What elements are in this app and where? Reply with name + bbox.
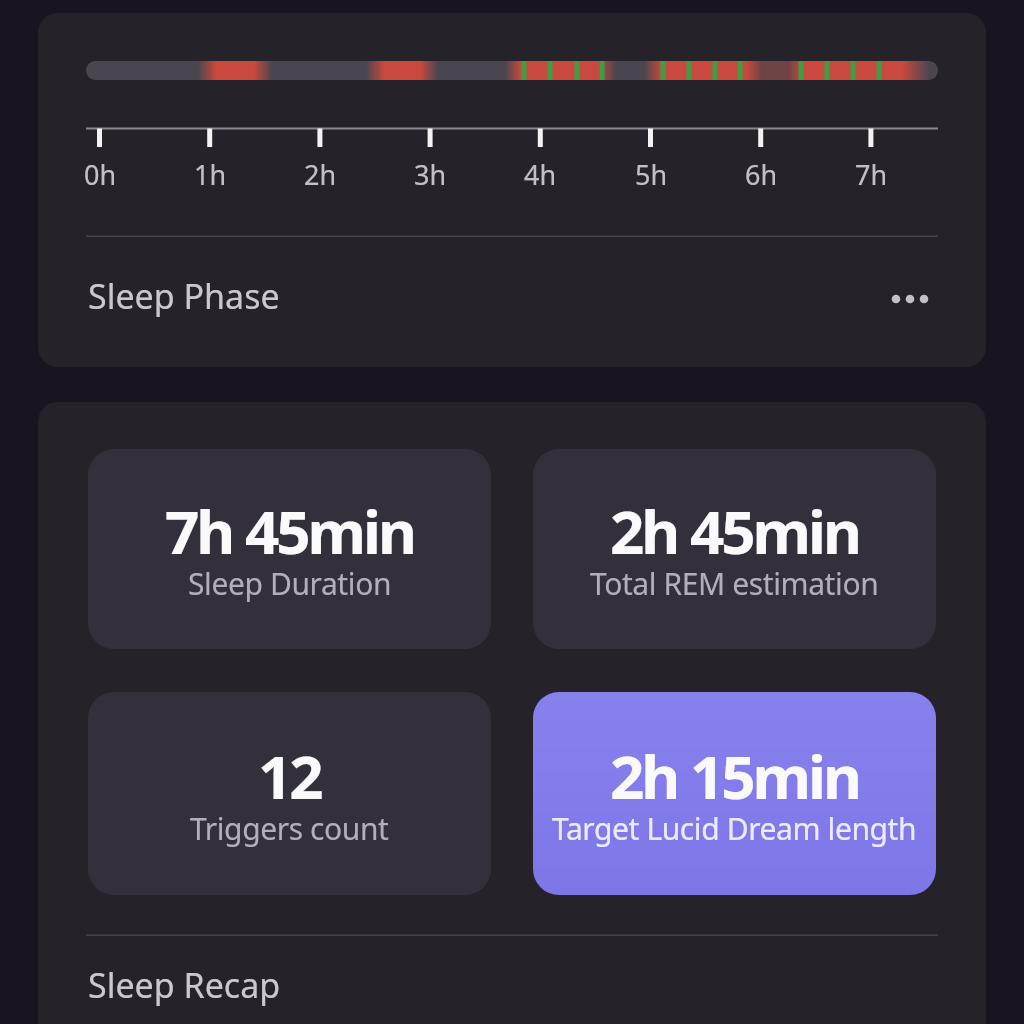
staticText: 3h bbox=[400, 156, 460, 193]
button[interactable]: 2h 15min bbox=[533, 692, 936, 895]
button[interactable]: 12 bbox=[88, 692, 491, 895]
staticText: Sleep Phase bbox=[88, 273, 280, 319]
staticText: 4h bbox=[510, 156, 570, 193]
staticText: 6h bbox=[731, 156, 791, 193]
staticText: 1h bbox=[180, 156, 240, 193]
staticText: 2h bbox=[290, 156, 350, 193]
button[interactable] bbox=[870, 279, 950, 319]
staticText: Total REM estimation bbox=[590, 563, 879, 604]
button[interactable]: 2h 45min bbox=[533, 449, 936, 649]
button[interactable]: 7h 45min bbox=[88, 449, 491, 649]
staticText: Sleep Recap bbox=[88, 962, 281, 1008]
staticText: 12 bbox=[258, 735, 321, 817]
staticText: 7h bbox=[841, 156, 901, 193]
staticText: Target Lucid Dream length bbox=[552, 808, 917, 849]
staticText: 0h bbox=[70, 156, 130, 193]
staticText: Triggers count bbox=[190, 808, 389, 849]
staticText: 7h 45min bbox=[165, 490, 414, 572]
staticText: Sleep Duration bbox=[188, 563, 392, 604]
staticText: 2h 15min bbox=[610, 735, 859, 817]
staticText: 2h 45min bbox=[610, 490, 859, 572]
staticText: 5h bbox=[621, 156, 681, 193]
